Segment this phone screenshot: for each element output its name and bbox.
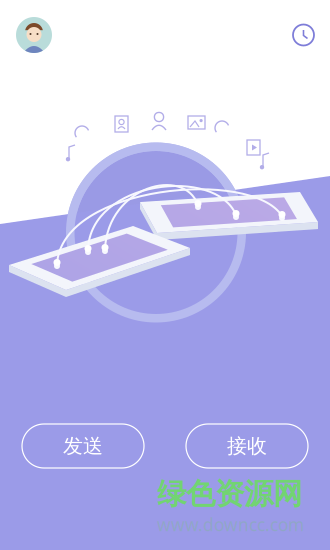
button[interactable]: 发送 — [22, 424, 144, 468]
staticText: www.downcc.com — [157, 513, 304, 536]
button[interactable]: 接收 — [186, 424, 308, 468]
staticText: 接收 — [227, 434, 267, 458]
button[interactable]: Transfer history — [293, 24, 314, 45]
staticText: 绿色资源网 — [157, 476, 302, 512]
staticText: 发送 — [63, 434, 103, 458]
button[interactable]: Profile — [16, 17, 52, 53]
